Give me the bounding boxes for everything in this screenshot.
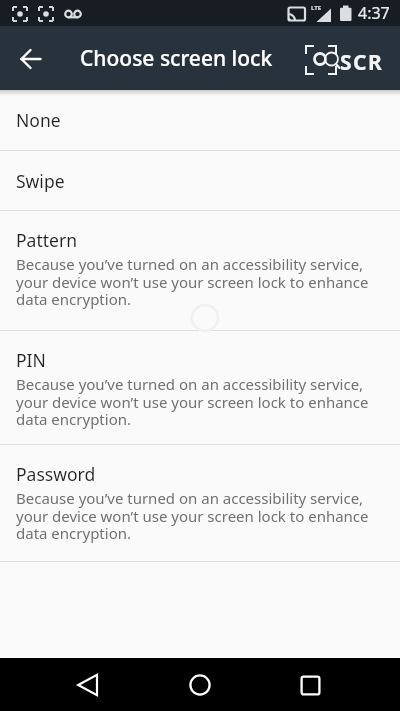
staticText: 4:37 (358, 2, 390, 24)
button[interactable]: PIN (0, 331, 400, 444)
button[interactable] (0, 26, 56, 90)
staticText: LTE (311, 4, 322, 12)
staticText: Because you’ve turned on an accessibilit… (16, 488, 369, 543)
staticText: SCR (340, 48, 384, 77)
staticText: PIN (16, 348, 46, 372)
button[interactable]: Swipe (0, 151, 400, 210)
staticText: Password (16, 462, 96, 486)
button[interactable] (284, 659, 336, 711)
button[interactable]: Password (0, 445, 400, 561)
staticText: Because you’ve turned on an accessibilit… (16, 254, 369, 309)
button[interactable]: Pattern (0, 211, 400, 330)
staticText: Pattern (16, 228, 77, 252)
staticText: Swipe (16, 169, 65, 193)
button[interactable] (174, 659, 226, 711)
staticText: None (16, 108, 61, 132)
staticText: Because you’ve turned on an accessibilit… (16, 374, 369, 429)
button[interactable]: None (0, 90, 400, 150)
staticText: Choose screen lock (80, 44, 273, 73)
button[interactable] (62, 659, 114, 711)
